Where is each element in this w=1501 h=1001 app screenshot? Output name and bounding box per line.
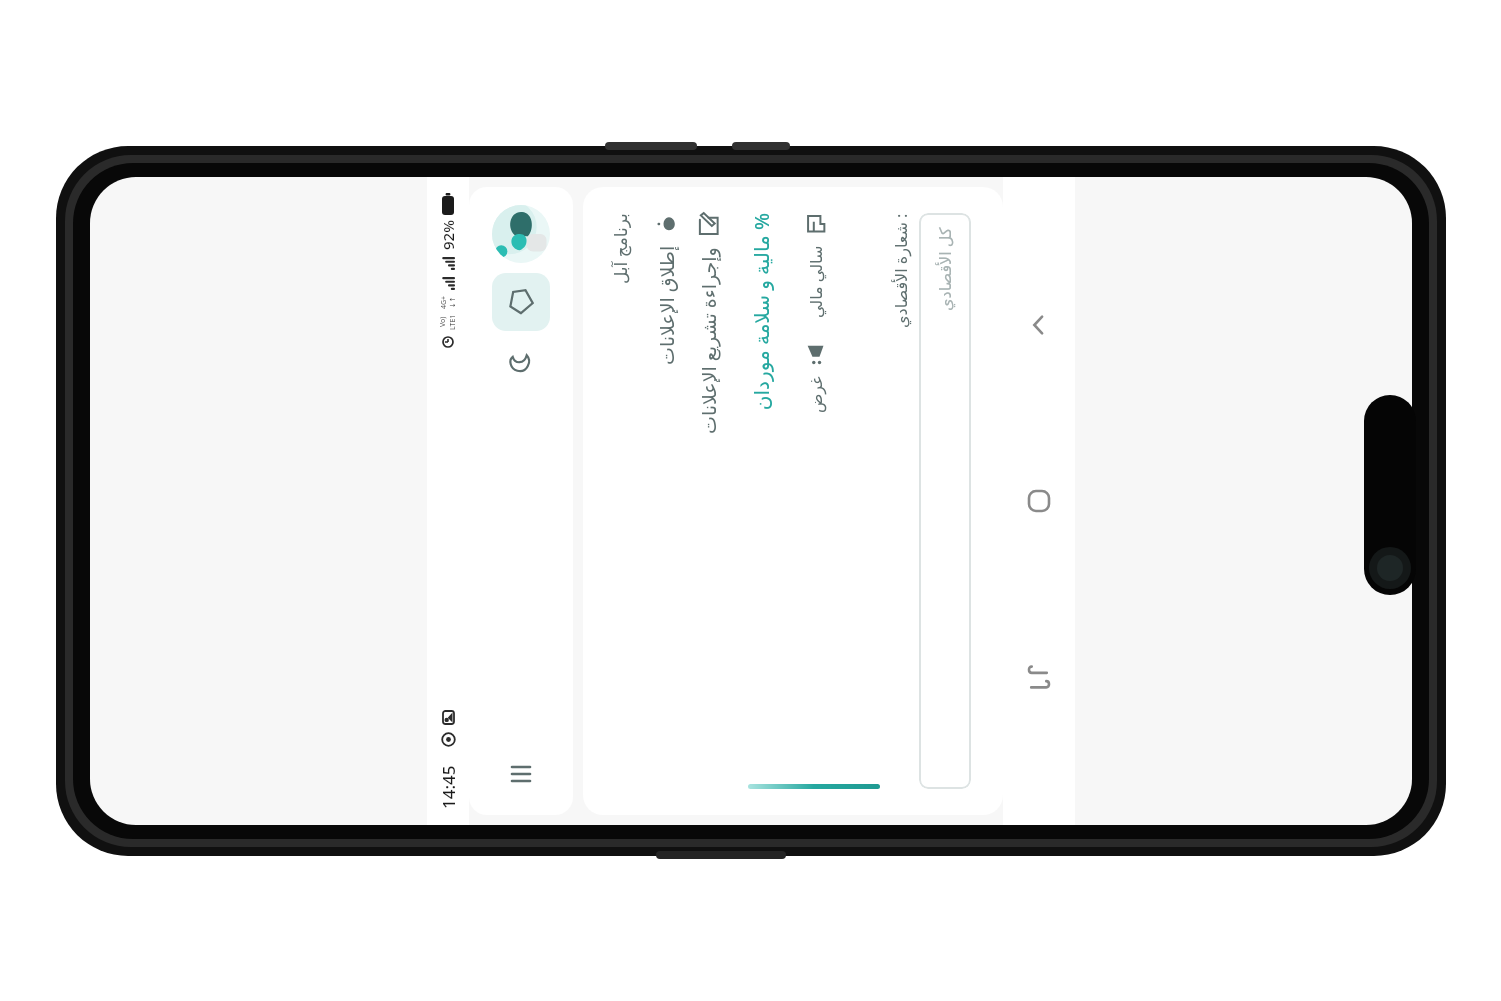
staticText: سالي مالي xyxy=(805,245,827,318)
button[interactable]: Recents xyxy=(1011,649,1067,705)
staticText: شعارة الأقصادي : xyxy=(890,213,912,328)
button[interactable]: Dark mode xyxy=(499,341,543,385)
staticText: 92% xyxy=(438,220,458,250)
button[interactable]: Home xyxy=(1011,473,1067,529)
button[interactable]: إطلاق الإعلانات xyxy=(654,213,680,365)
staticText: كل الأقصادي xyxy=(934,227,956,311)
button[interactable]: وإجراءة تشريع الإعلانات xyxy=(696,213,722,434)
staticText: غرض xyxy=(807,376,826,413)
staticText: مالية و سلامة موردان % xyxy=(748,213,775,411)
button[interactable]: Eco xyxy=(492,273,550,331)
button[interactable]: Profile xyxy=(492,205,550,263)
staticText: وإجراءة تشريع الإعلانات xyxy=(696,247,722,434)
staticText: برنامج آبل xyxy=(609,213,632,284)
staticText: 4G+ xyxy=(439,295,449,309)
staticText: Vo) xyxy=(438,316,448,327)
staticText: ↓↑ xyxy=(449,296,457,308)
button[interactable]: Back xyxy=(1011,297,1067,353)
staticText: 14:45 xyxy=(437,765,460,809)
button[interactable]: كل الأقصادي xyxy=(919,213,971,789)
staticText: إطلاق الإعلانات xyxy=(654,245,680,365)
button[interactable]: Menu xyxy=(498,751,544,797)
staticText: LTE1 xyxy=(448,314,458,330)
